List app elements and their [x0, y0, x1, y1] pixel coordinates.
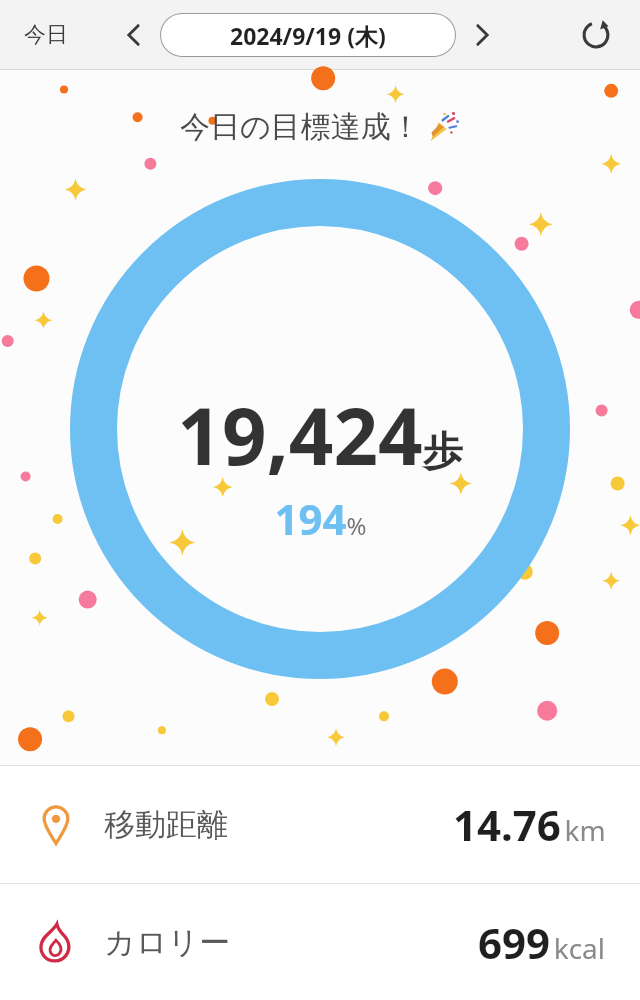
staticText: 194%: [274, 490, 367, 547]
staticText: 14.76 km: [453, 796, 606, 853]
button[interactable]: 今日: [18, 15, 74, 55]
staticText: 2024/9/19 (木): [230, 20, 386, 51]
staticText: 19,424歩: [177, 382, 463, 488]
staticText: 699 kcal: [478, 914, 606, 971]
staticText: カロリー: [104, 923, 231, 962]
button[interactable]: 移動距離: [0, 766, 640, 883]
button[interactable]: Refresh: [570, 9, 622, 61]
button[interactable]: Next day: [460, 13, 504, 57]
button[interactable]: 2024/9/19 (木): [160, 13, 456, 57]
staticText: 移動距離: [104, 805, 228, 844]
button[interactable]: カロリー: [0, 884, 640, 1000]
staticText: 今日の目標達成！: [180, 108, 421, 146]
button[interactable]: Previous day: [112, 13, 156, 57]
staticText: 今日: [24, 21, 68, 49]
